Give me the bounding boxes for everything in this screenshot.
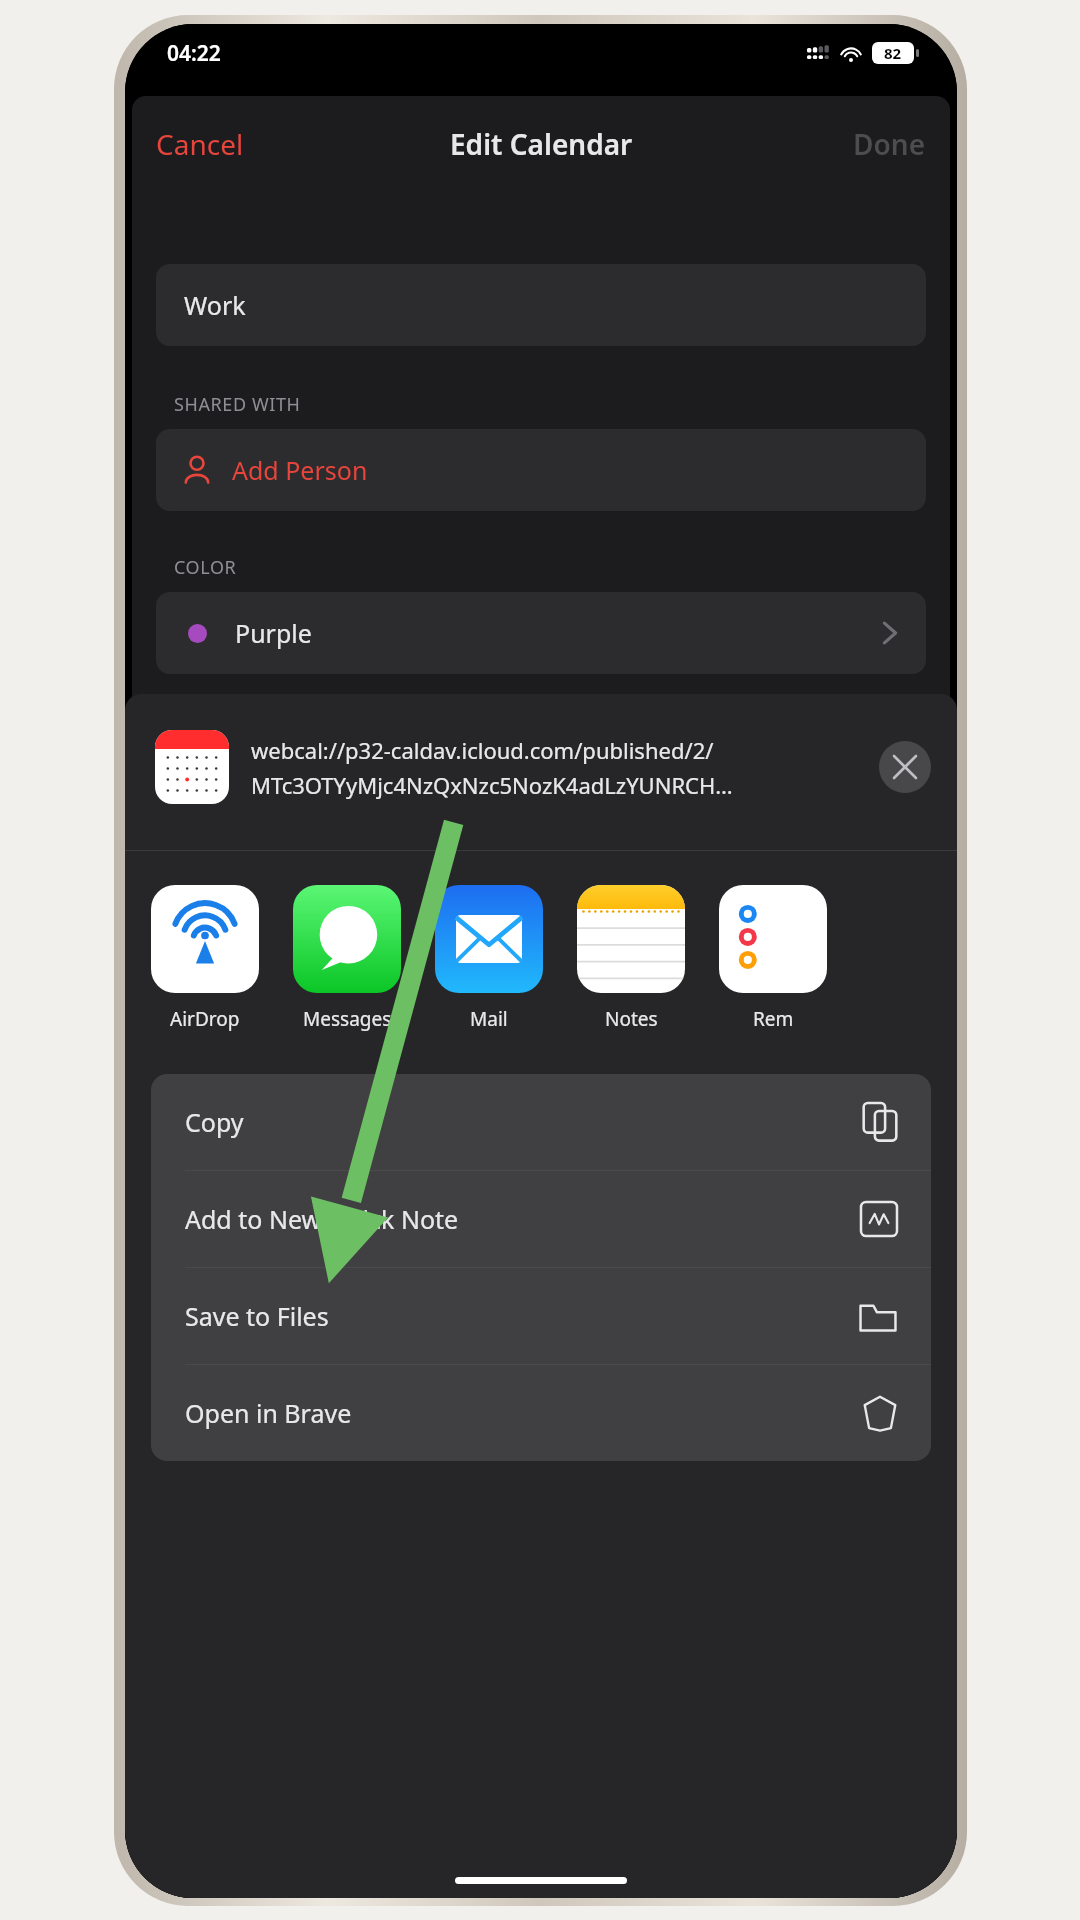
staticText: Notes xyxy=(605,1006,658,1032)
staticText: Rem xyxy=(753,1006,794,1032)
staticText: NOTIFICATIONS xyxy=(174,718,316,743)
staticText: 04:22 xyxy=(167,39,221,68)
button[interactable]: Messages xyxy=(293,885,401,1032)
button[interactable]: AirDrop xyxy=(151,885,259,1032)
staticText: MTc3OTYyMjc4NzQxNzc5NozK4adLzYUNRCH… xyxy=(251,770,733,800)
staticText: Open in Brave xyxy=(185,1396,352,1430)
staticText: Copy xyxy=(185,1105,244,1139)
staticText: Add to New Quick Note xyxy=(185,1202,459,1236)
button[interactable]: Open in Brave xyxy=(151,1365,931,1461)
button[interactable]: Done xyxy=(829,117,950,171)
staticText: Purple xyxy=(235,616,312,650)
staticText: Messages xyxy=(303,1006,392,1032)
button[interactable]: Copy xyxy=(151,1074,931,1170)
staticText: Edit Calendar xyxy=(450,125,633,163)
staticText: Work xyxy=(184,288,246,322)
staticText: Add Person xyxy=(232,453,368,487)
button[interactable]: Purple xyxy=(156,592,926,674)
staticText: 82 xyxy=(884,43,902,63)
staticText: AirDrop xyxy=(170,1006,240,1032)
button[interactable]: Rem xyxy=(719,885,827,1032)
staticText: SHARED WITH xyxy=(174,392,301,417)
staticText: Mail xyxy=(470,1006,508,1032)
button[interactable]: Cancel xyxy=(132,117,268,171)
button[interactable]: Add to New Quick Note xyxy=(151,1171,931,1267)
staticText: COLOR xyxy=(174,555,237,580)
button[interactable]: Save to Files xyxy=(151,1268,931,1364)
button[interactable]: Mail xyxy=(435,885,543,1032)
staticText: webcal://p32-caldav.icloud.com/published… xyxy=(251,735,714,765)
staticText: Save to Files xyxy=(185,1299,329,1333)
button[interactable]: Close xyxy=(879,741,931,793)
button[interactable]: Notes xyxy=(577,885,685,1032)
button[interactable]: Add Person xyxy=(156,429,926,511)
